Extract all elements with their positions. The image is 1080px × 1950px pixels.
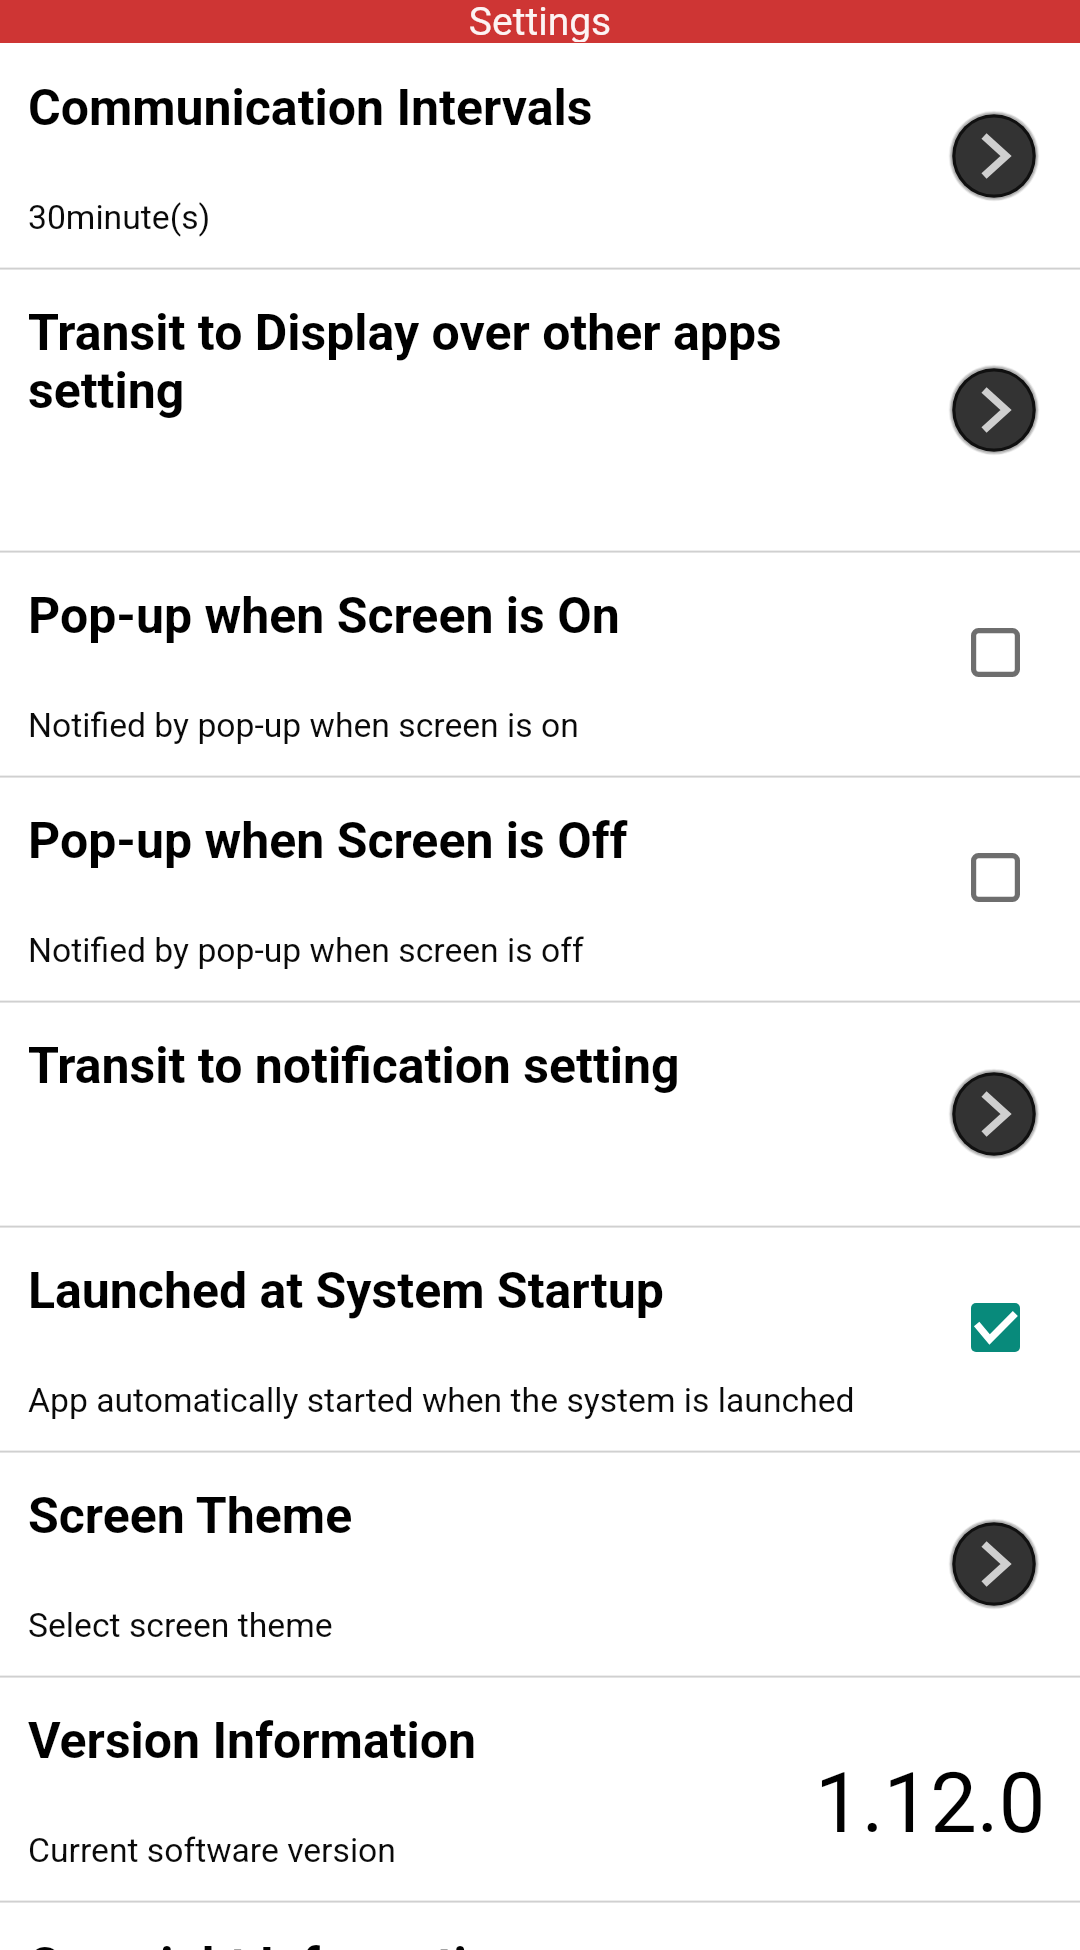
staticText: Pop-up when Screen is Off (28, 812, 628, 871)
staticText: Launched at System Startup (28, 1262, 664, 1321)
button[interactable]: Open (939, 1059, 1049, 1169)
staticText: 1.12.0 (815, 1755, 1046, 1852)
button[interactable]: Pop-up when Screen is On (0, 551, 1080, 776)
button[interactable]: Communication Intervals (0, 43, 1080, 268)
button[interactable]: Transit to Display over other apps setti… (0, 268, 1080, 551)
staticText: Copyright Information (28, 1937, 523, 1950)
button[interactable]: Screen Theme (0, 1451, 1080, 1676)
button[interactable]: Pop-up when Screen is Off (0, 776, 1080, 1001)
button[interactable]: Open (939, 1509, 1049, 1619)
button[interactable]: Copyright Information (0, 1901, 1080, 1950)
staticText: 30minute(s) (28, 198, 211, 237)
staticText: Transit to Display over other apps setti… (28, 304, 930, 420)
staticText: Select screen theme (28, 1606, 333, 1645)
button[interactable]: Open (939, 355, 1049, 465)
staticText: Current software version (28, 1831, 396, 1870)
staticText: Notified by pop-up when screen is off (28, 931, 584, 970)
button[interactable]: Version Information (0, 1676, 1080, 1901)
button[interactable]: Launched at System Startup (0, 1226, 1080, 1451)
staticText: Communication Intervals (28, 79, 593, 138)
button[interactable]: Launched at System Startup, checked (940, 1272, 1050, 1382)
staticText: Screen Theme (28, 1487, 353, 1546)
staticText: Notified by pop-up when screen is on (28, 706, 579, 745)
button[interactable]: Open (939, 101, 1049, 211)
staticText: App automatically started when the syste… (28, 1381, 855, 1420)
button[interactable]: Pop-up when Screen is Off, unchecked (940, 822, 1050, 932)
staticText: Transit to notification setting (28, 1037, 680, 1096)
staticText: Settings (0, 0, 1080, 42)
button[interactable]: Transit to notification setting (0, 1001, 1080, 1226)
staticText: Pop-up when Screen is On (28, 587, 620, 646)
staticText: Version Information (28, 1712, 477, 1771)
button[interactable]: Pop-up when Screen is On, unchecked (940, 597, 1050, 707)
